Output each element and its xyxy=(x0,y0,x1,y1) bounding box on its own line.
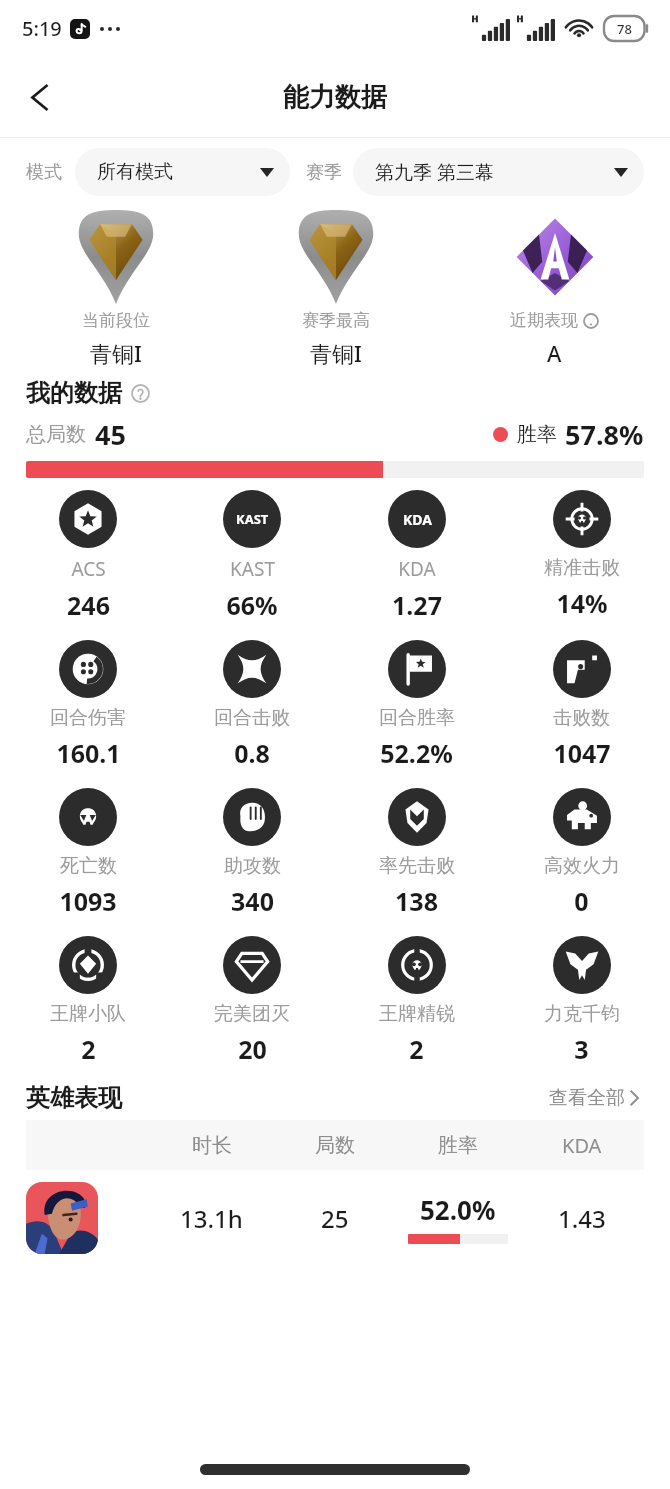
button[interactable]: 回合击败 xyxy=(170,638,334,772)
staticText: 13.1h xyxy=(180,1202,243,1235)
staticText: 高效火力 xyxy=(544,854,620,878)
staticText: 138 xyxy=(395,884,438,918)
staticText: 1093 xyxy=(59,884,117,918)
staticText: 回合击败 xyxy=(214,706,290,730)
button[interactable]: ACS xyxy=(6,488,170,624)
staticText: 能力数据 xyxy=(283,81,387,114)
staticText: KAST xyxy=(236,510,269,528)
button[interactable]: 王牌小队 xyxy=(6,934,170,1068)
staticText: 52.0% xyxy=(420,1192,496,1227)
button[interactable]: Info xyxy=(129,382,151,404)
button[interactable]: 完美团灭 xyxy=(170,934,334,1068)
staticText: 局数 xyxy=(315,1133,355,1158)
staticText: 赛季 xyxy=(306,161,342,184)
staticText: 1.27 xyxy=(392,588,442,622)
staticText: 死亡数 xyxy=(60,854,117,878)
button[interactable]: Agent xyxy=(26,1182,98,1254)
staticText: 完美团灭 xyxy=(214,1002,290,1026)
staticText: 1.43 xyxy=(558,1202,606,1235)
staticText: 246 xyxy=(67,588,110,622)
staticText: 时长 xyxy=(192,1133,232,1158)
button[interactable]: 死亡数 xyxy=(6,786,170,920)
staticText: 王牌精锐 xyxy=(379,1002,455,1026)
button[interactable]: KAST xyxy=(170,488,334,624)
staticText: KDA xyxy=(403,510,432,529)
staticText: KDA xyxy=(562,1132,602,1159)
staticText: 0 xyxy=(574,884,589,918)
staticText: 20 xyxy=(238,1032,267,1066)
button[interactable]: 力克千钧 xyxy=(499,934,664,1068)
button[interactable]: 第九季 第三幕 xyxy=(353,148,644,196)
staticText: 王牌小队 xyxy=(50,1002,126,1026)
staticText: 2 xyxy=(409,1032,424,1066)
staticText: 5:19 xyxy=(22,15,62,42)
staticText: 查看全部 xyxy=(549,1086,625,1110)
staticText: 所有模式 xyxy=(97,160,173,184)
staticText: ACS xyxy=(71,556,106,582)
staticText: 14% xyxy=(556,586,608,620)
staticText: 近期表现 xyxy=(510,310,578,331)
staticText: 66% xyxy=(226,588,278,622)
staticText: 0.8 xyxy=(234,736,270,770)
staticText: KDA xyxy=(398,556,436,582)
button[interactable]: 所有模式 xyxy=(75,148,290,196)
staticText: 45 xyxy=(95,416,126,453)
staticText: 青铜I xyxy=(90,338,142,368)
staticText: 青铜I xyxy=(310,338,362,368)
button[interactable]: 回合伤害 xyxy=(6,638,170,772)
button[interactable]: 王牌精锐 xyxy=(334,934,499,1068)
staticText: 英雄表现 xyxy=(26,1083,122,1113)
staticText: 3 xyxy=(574,1032,589,1066)
staticText: 2 xyxy=(81,1032,96,1066)
staticText: A xyxy=(547,338,562,368)
button[interactable]: 助攻数 xyxy=(170,786,334,920)
staticText: 25 xyxy=(321,1202,349,1235)
staticText: 率先击败 xyxy=(379,854,455,878)
staticText: 精准击败 xyxy=(544,556,620,580)
staticText: 我的数据 xyxy=(26,378,122,408)
staticText: 赛季最高 xyxy=(302,310,370,331)
staticText: 57.8% xyxy=(565,416,644,453)
button[interactable]: 近期表现 xyxy=(445,204,664,368)
button[interactable]: 高效火力 xyxy=(499,786,664,920)
staticText: 回合伤害 xyxy=(50,706,126,730)
button[interactable]: 查看全部 xyxy=(545,1082,644,1114)
button[interactable]: 击败数 xyxy=(499,638,664,772)
staticText: 当前段位 xyxy=(82,310,150,331)
staticText: 胜率 xyxy=(517,422,557,447)
staticText: 总局数 xyxy=(26,422,86,447)
button[interactable]: 率先击败 xyxy=(334,786,499,920)
staticText: 力克千钧 xyxy=(544,1002,620,1026)
button[interactable]: 赛季最高 xyxy=(226,204,445,368)
button[interactable]: Back xyxy=(12,69,68,125)
staticText: 78 xyxy=(617,20,632,38)
button[interactable]: 回合胜率 xyxy=(334,638,499,772)
staticText: 1047 xyxy=(553,736,611,770)
staticText: 160.1 xyxy=(56,736,121,770)
staticText: 340 xyxy=(231,884,274,918)
button[interactable]: KDA xyxy=(334,488,499,624)
button[interactable]: 当前段位 xyxy=(6,204,226,368)
staticText: 胜率 xyxy=(438,1133,478,1158)
staticText: 52.2% xyxy=(380,736,453,770)
staticText: 击败数 xyxy=(553,706,610,730)
staticText: 模式 xyxy=(26,161,62,184)
button[interactable]: 精准击败 xyxy=(499,488,664,622)
staticText: 回合胜率 xyxy=(379,706,455,730)
staticText: 助攻数 xyxy=(224,854,281,878)
staticText: 第九季 第三幕 xyxy=(375,159,494,185)
staticText: KAST xyxy=(230,556,275,582)
